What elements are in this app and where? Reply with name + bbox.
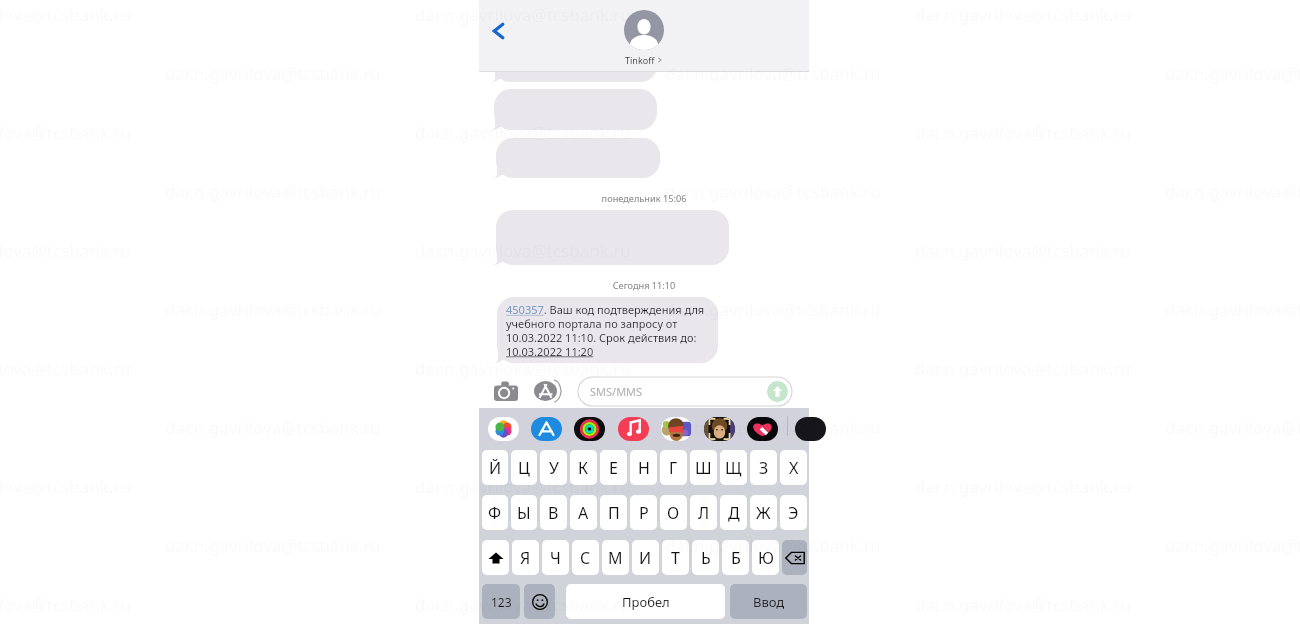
staticText: Б: [731, 547, 741, 569]
button[interactable]: Н: [630, 450, 657, 485]
button[interactable]: App Store: [534, 381, 557, 401]
button[interactable]: [488, 210, 729, 265]
staticText: dar.n.gavrilova@tcsbank.ru: [415, 239, 631, 262]
button[interactable]: Л: [690, 495, 717, 530]
button[interactable]: App Store: [531, 417, 562, 441]
staticText: А: [578, 502, 589, 524]
button[interactable]: Ч: [542, 540, 569, 575]
button[interactable]: 450357. Ваш код подтверждения для учебно…: [489, 297, 718, 363]
staticText: Й: [489, 457, 502, 479]
button[interactable]: Ф: [482, 495, 508, 530]
staticText: Щ: [725, 457, 742, 479]
staticText: Ь: [701, 547, 711, 569]
staticText: dar.n.gavrilova@tcsbank.ru: [665, 298, 881, 321]
button[interactable]: [488, 138, 660, 178]
button[interactable]: У: [540, 450, 567, 485]
button[interactable]: Backspace: [782, 540, 807, 575]
button[interactable]: Ш: [690, 450, 717, 485]
button[interactable]: Б: [722, 540, 749, 575]
button[interactable]: О: [660, 495, 687, 530]
staticText: dar.n.gavrilova@tcsbank.ru: [665, 534, 881, 557]
staticText: Ю: [758, 547, 774, 569]
button[interactable]: Memoji: [704, 417, 735, 441]
staticText: Л: [698, 502, 710, 524]
button[interactable]: Ь: [692, 540, 719, 575]
button[interactable]: 123: [482, 584, 520, 619]
button[interactable]: Music: [618, 417, 649, 441]
button[interactable]: Д: [720, 495, 747, 530]
button[interactable]: В: [540, 495, 567, 530]
button[interactable]: Ж: [750, 495, 777, 530]
other: Backspace: [785, 548, 805, 568]
button[interactable]: Memoji stickers: [661, 417, 692, 441]
button[interactable]: More apps: [795, 417, 826, 441]
staticText: К: [578, 457, 589, 479]
button[interactable]: [486, 50, 657, 82]
staticText: dar.n.gavrilova@tcsbank.ru: [665, 180, 881, 203]
button[interactable]: Ю: [752, 540, 779, 575]
staticText: dar.n.gavrilova@tcsbank.ru: [415, 593, 631, 616]
button[interactable]: Ввод: [730, 584, 807, 619]
button[interactable]: М: [602, 540, 629, 575]
staticText: Ф: [488, 502, 502, 524]
staticText: И: [639, 547, 652, 569]
button[interactable]: SMS/MMS: [578, 377, 792, 406]
staticText: dar.n.gavrilova@tcsbank.ru: [415, 121, 631, 144]
button[interactable]: Tinkoff: [624, 10, 664, 66]
button[interactable]: С: [572, 540, 599, 575]
staticText: Я: [520, 547, 531, 569]
other: Emoji: [532, 594, 548, 610]
button[interactable]: Э: [780, 495, 807, 530]
button[interactable]: Ы: [511, 495, 537, 530]
button[interactable]: Digital Touch: [747, 417, 778, 441]
button[interactable]: Пробел: [566, 584, 725, 619]
button[interactable]: Photos: [488, 417, 519, 441]
button[interactable]: Fitness: [574, 417, 605, 441]
staticText: Х: [789, 457, 799, 479]
button[interactable]: Е: [600, 450, 627, 485]
button[interactable]: Р: [630, 495, 657, 530]
button[interactable]: Й: [482, 450, 508, 485]
staticText: Э: [788, 502, 799, 524]
button[interactable]: Back: [486, 17, 514, 45]
button[interactable]: К: [570, 450, 597, 485]
button[interactable]: Т: [662, 540, 689, 575]
button[interactable]: З: [750, 450, 777, 485]
staticText: Ц: [518, 457, 530, 479]
other: Shift: [488, 550, 504, 566]
button[interactable]: [486, 89, 657, 130]
button[interactable]: Shift: [482, 540, 509, 575]
button[interactable]: Г: [660, 450, 687, 485]
button[interactable]: И: [632, 540, 659, 575]
staticText: Р: [639, 502, 649, 524]
staticText: SMS/MMS: [590, 384, 643, 399]
staticText: Ш: [695, 457, 712, 479]
button[interactable]: Я: [512, 540, 539, 575]
button[interactable]: Emoji: [524, 584, 555, 619]
staticText: У: [549, 457, 559, 479]
button[interactable]: А: [570, 495, 597, 530]
staticText: Ч: [550, 547, 561, 569]
button[interactable]: Ц: [511, 450, 537, 485]
staticText: dar.n.gavrilova@tcsbank.ru: [415, 357, 631, 380]
button[interactable]: Х: [780, 450, 807, 485]
button[interactable]: П: [600, 495, 627, 530]
button[interactable]: Camera: [494, 381, 518, 401]
button[interactable]: Щ: [720, 450, 747, 485]
staticText: dar.n.gavrilova@tcsbank.ru: [665, 416, 881, 439]
button[interactable]: Send: [767, 381, 788, 402]
